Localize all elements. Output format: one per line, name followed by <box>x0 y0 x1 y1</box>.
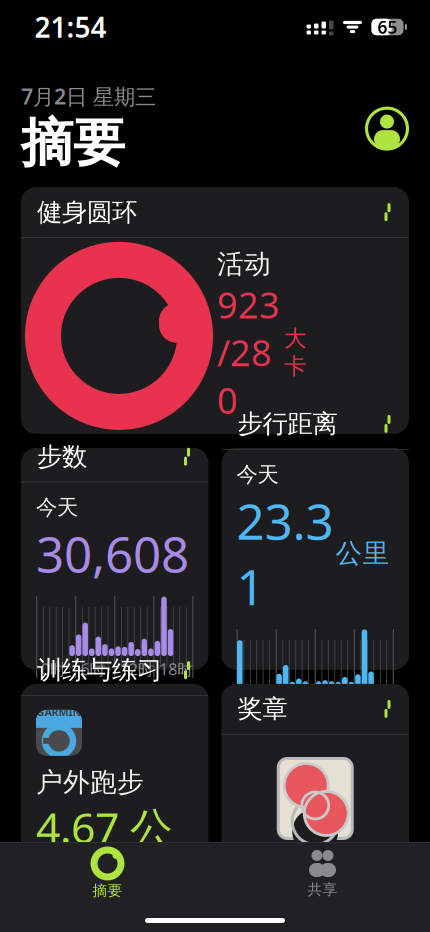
staticText: 18时 <box>360 691 394 712</box>
button[interactable]: 个人资料 <box>365 107 409 151</box>
staticText: 4.67 公里 <box>36 799 173 908</box>
staticText: 今天 <box>36 494 78 521</box>
staticText: 活动 <box>217 248 271 281</box>
staticText: 共享 <box>307 880 337 898</box>
button[interactable]: 训练与练习 <box>21 684 208 906</box>
staticText: GARMIN. <box>36 705 81 733</box>
staticText: 23.31 <box>236 488 333 619</box>
staticText: 训练与练习 <box>37 655 162 686</box>
staticText: 健身圆环 <box>37 197 137 228</box>
staticText: 7月2日 星期三 <box>21 82 156 110</box>
staticText: 0时 <box>241 691 266 712</box>
button[interactable]: 趋势 <box>21 920 409 932</box>
staticText: 0时 <box>41 658 66 680</box>
staticText: 12时 <box>120 658 154 680</box>
staticText: 18时 <box>159 658 193 680</box>
staticText: 923/280 <box>217 281 280 424</box>
staticText: 摘要 <box>92 881 122 899</box>
staticText: 今天 <box>236 462 278 488</box>
staticText: 6时 <box>80 658 105 680</box>
staticText: 65 <box>377 15 397 38</box>
staticText: 奖章 <box>237 693 287 724</box>
button[interactable]: 步数 <box>21 448 208 670</box>
staticText: 摘要 <box>21 111 125 175</box>
staticText: 步行距离 <box>237 408 337 439</box>
button[interactable]: 奖章 <box>221 684 409 906</box>
button[interactable]: 摘要 <box>0 840 215 899</box>
staticText: 30,608 <box>36 521 189 586</box>
staticText: 6时 <box>281 691 306 712</box>
staticText: 300% 达成活动目标 <box>228 862 403 889</box>
staticText: 21:54 <box>34 8 106 46</box>
staticText: 大卡 <box>284 324 307 380</box>
button[interactable]: 健身圆环 <box>21 187 409 434</box>
staticText: 公里 <box>335 537 389 570</box>
staticText: 步数 <box>37 441 87 472</box>
button[interactable]: 步行距离 <box>221 448 409 670</box>
button[interactable]: 共享 <box>215 841 430 898</box>
staticText: 户外跑步 <box>36 766 144 799</box>
